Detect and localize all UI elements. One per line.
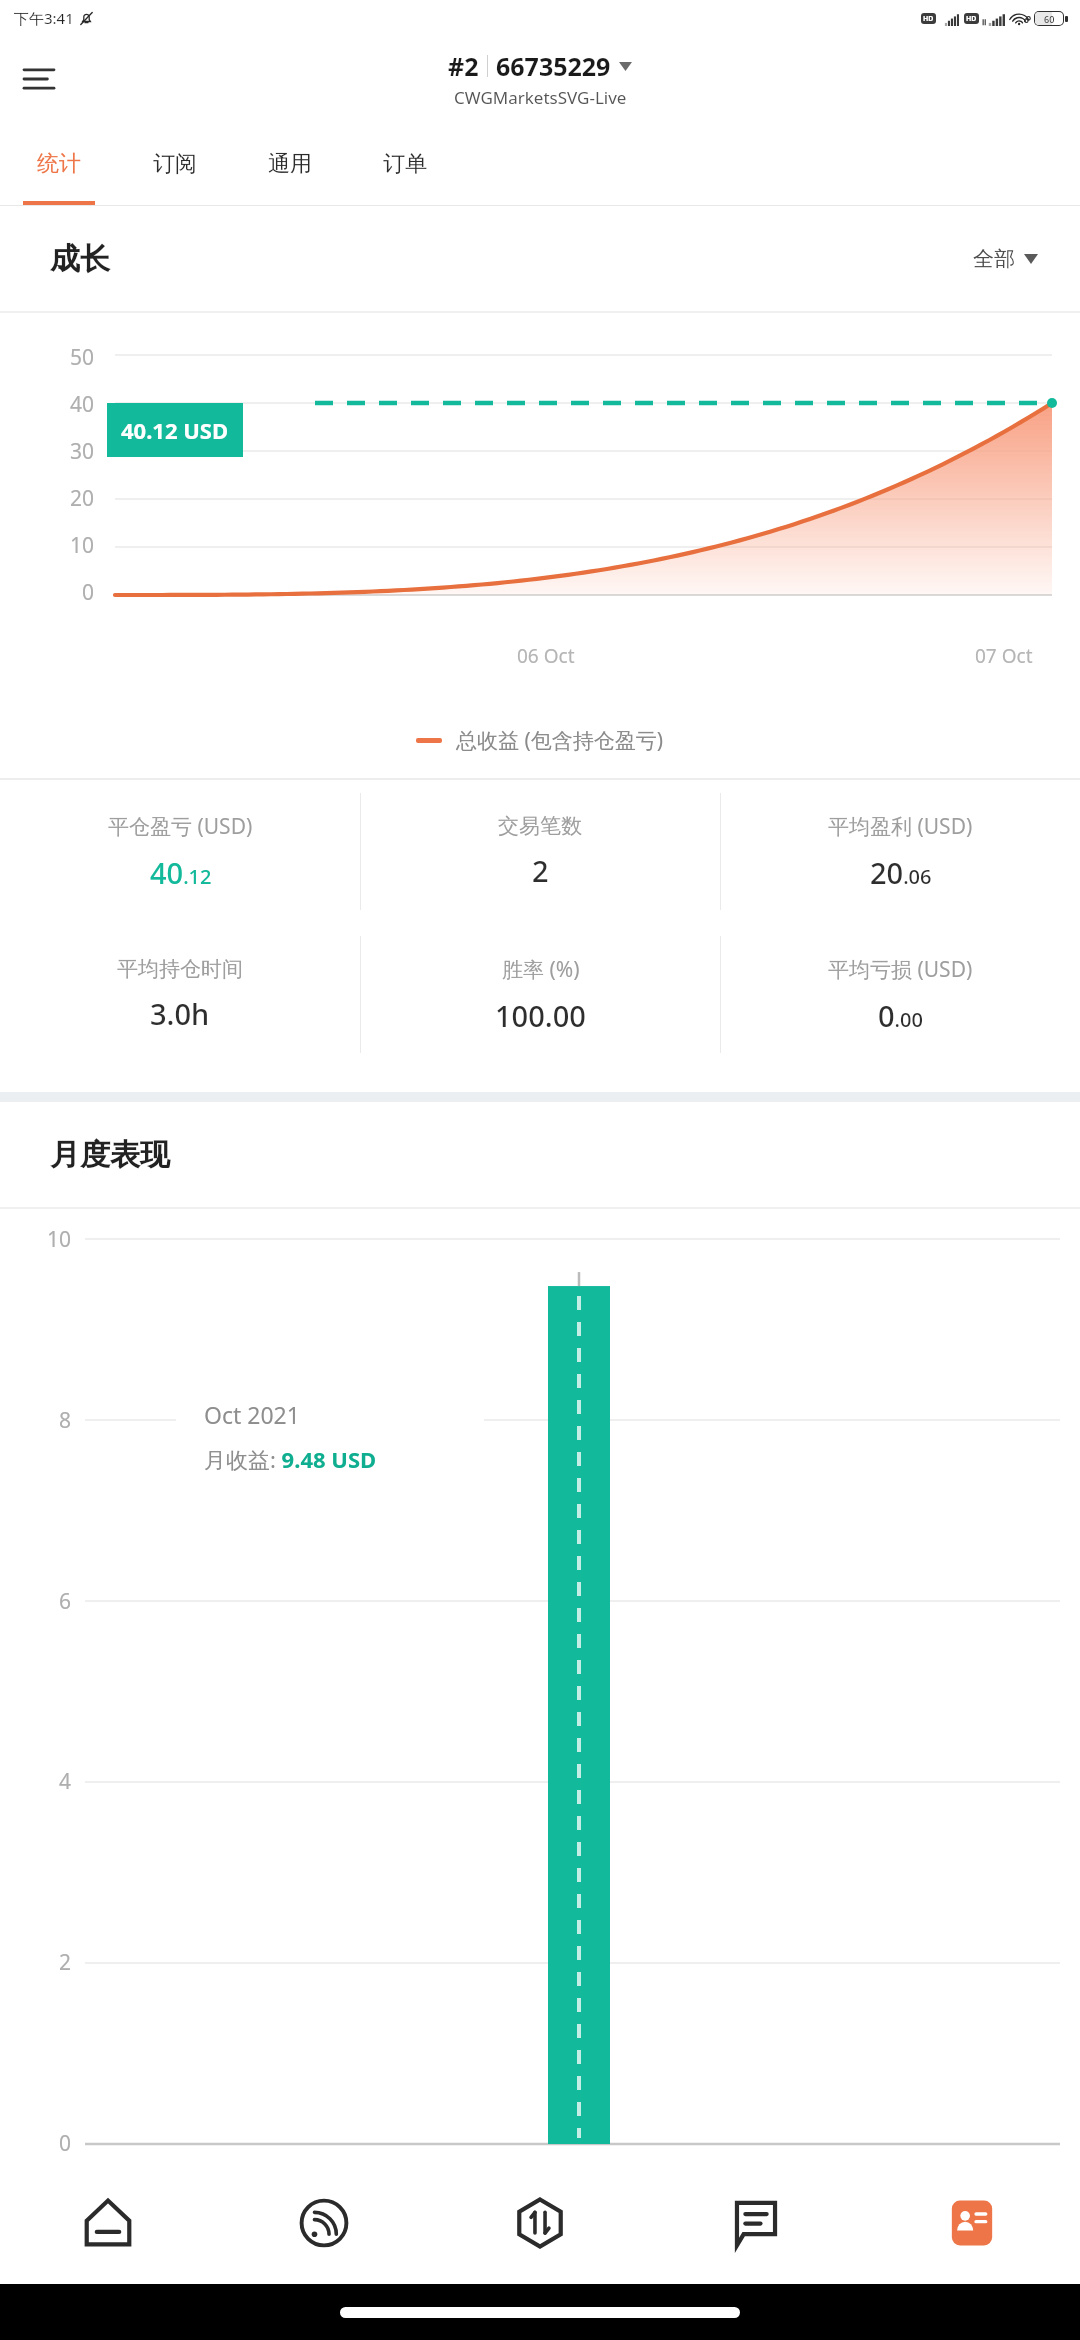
staticText: 0 — [59, 2129, 72, 2158]
staticText: 总收益 (包含持仓盈亏) — [456, 726, 664, 755]
button[interactable]: 平均盈利 (USD) — [720, 780, 1080, 923]
staticText: 平均盈利 (USD) — [828, 812, 973, 841]
staticText: 下午3:41 — [14, 8, 74, 28]
button[interactable]: 平仓盈亏 (USD) — [0, 780, 360, 923]
staticText: 订阅 — [153, 150, 197, 178]
button[interactable]: Profile — [864, 2174, 1080, 2284]
staticText: 月度表现 — [50, 1136, 170, 1174]
staticText: 平均持仓时间 — [117, 956, 243, 982]
button[interactable]: #2 — [448, 49, 632, 109]
staticText: 8 — [59, 1406, 72, 1435]
staticText: 交易笔数 — [498, 813, 582, 839]
button[interactable]: 统计 — [0, 121, 117, 206]
staticText: 6 — [59, 1587, 72, 1616]
staticText: #2 — [448, 49, 479, 83]
button[interactable]: 订阅 — [117, 121, 232, 206]
button[interactable]: 全部 — [973, 246, 1038, 272]
staticText: 40.12 — [150, 853, 212, 892]
staticText: 成长 — [50, 240, 110, 278]
button[interactable]: Home — [0, 2174, 216, 2284]
staticText: 20.06 — [870, 853, 932, 892]
staticText: 2 — [59, 1948, 72, 1977]
staticText: 订单 — [383, 150, 427, 178]
button[interactable]: Trade — [432, 2174, 648, 2284]
staticText: 0.00 — [878, 996, 923, 1035]
button[interactable]: 通用 — [232, 121, 347, 206]
staticText: 30 — [70, 437, 95, 466]
staticText: 10 — [70, 531, 95, 560]
button[interactable]: Messages — [648, 2174, 864, 2284]
staticText: 月收益: 9.48 USD — [204, 1444, 377, 1474]
staticText: 40.12 USD — [121, 415, 229, 445]
button[interactable]: 交易笔数 — [360, 780, 720, 923]
staticText: HD — [923, 14, 934, 24]
staticText: 4 — [59, 1767, 72, 1796]
button[interactable]: 胜率 (%) — [360, 923, 720, 1066]
button[interactable]: Menu — [8, 48, 70, 110]
button[interactable]: 平均持仓时间 — [0, 923, 360, 1066]
staticText: 20 — [70, 484, 95, 513]
button[interactable]: 平均亏损 (USD) — [720, 923, 1080, 1066]
staticText: 平均亏损 (USD) — [828, 955, 973, 984]
staticText: 40 — [70, 390, 95, 419]
staticText: CWGMarketsSVG-Live — [454, 86, 627, 109]
staticText: 2 — [532, 851, 549, 890]
staticText: Oct 2021 — [204, 1399, 300, 1430]
staticText: 07 Oct — [975, 643, 1033, 669]
staticText: 平仓盈亏 (USD) — [108, 812, 253, 841]
button[interactable]: Signals — [216, 2174, 432, 2284]
staticText: 0 — [82, 578, 95, 607]
staticText: 50 — [70, 343, 95, 372]
staticText: 10 — [47, 1225, 72, 1254]
staticText: 66735229 — [496, 49, 611, 83]
staticText: 通用 — [268, 150, 312, 178]
staticText: HD — [966, 14, 977, 24]
button[interactable]: 订单 — [347, 121, 462, 206]
staticText: 06 Oct — [517, 643, 575, 669]
staticText: 3.0h — [150, 994, 210, 1033]
staticText: 60 — [1044, 13, 1055, 25]
staticText: 统计 — [37, 150, 81, 178]
staticText: 胜率 (%) — [502, 955, 580, 984]
staticText: 全部 — [973, 246, 1015, 272]
staticText: 100.00 — [495, 996, 586, 1035]
